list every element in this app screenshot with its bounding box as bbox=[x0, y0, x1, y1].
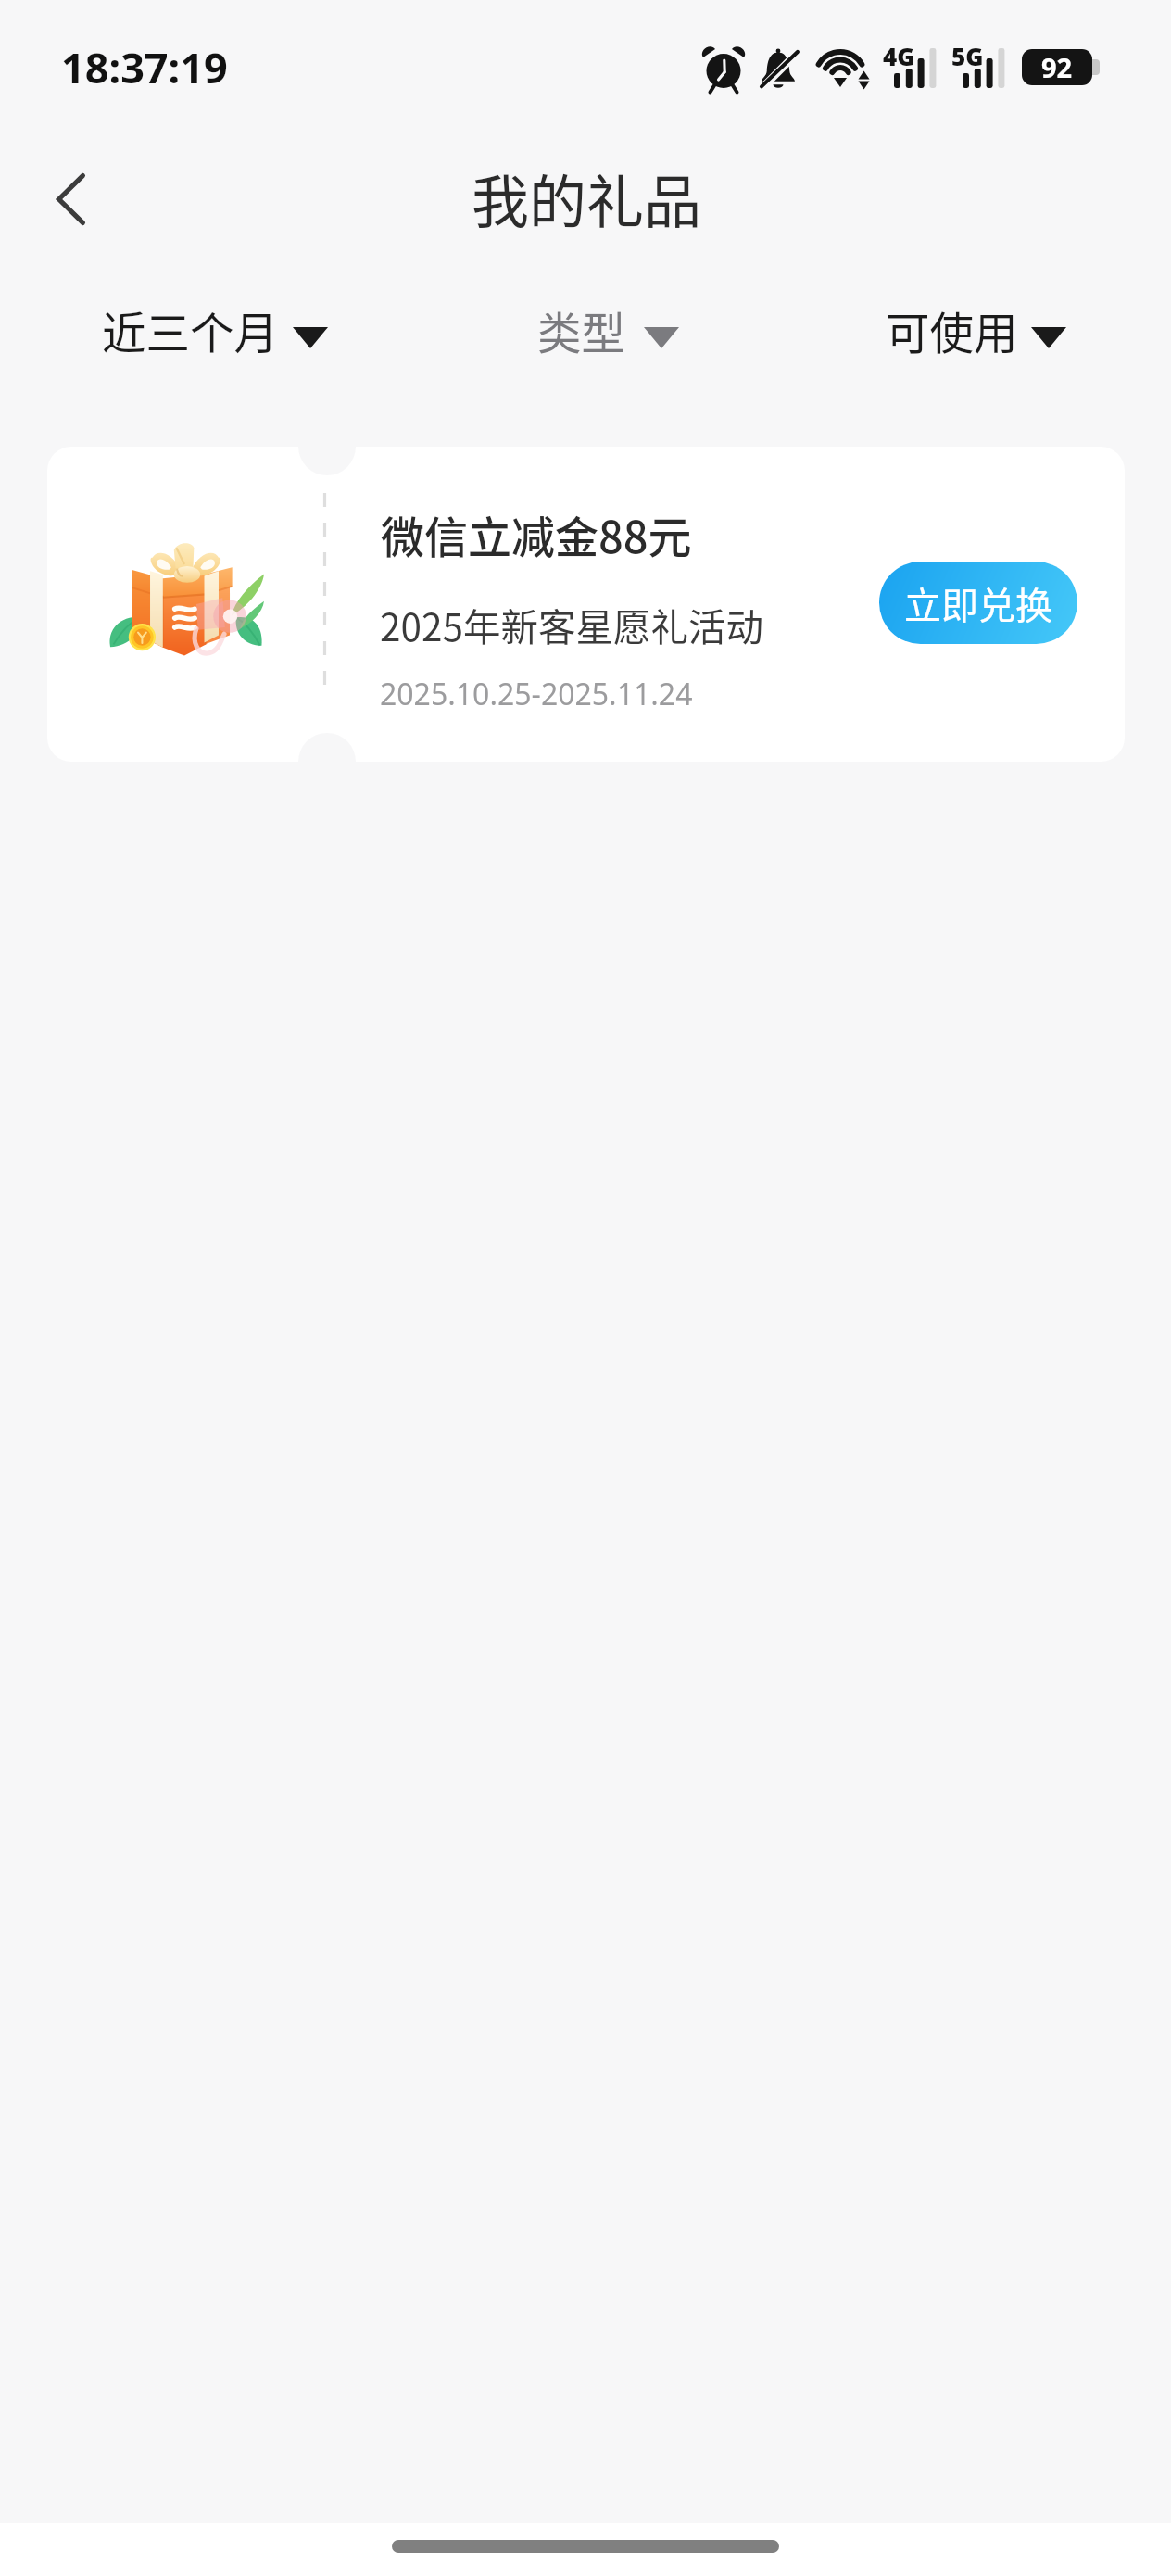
staticText: 2025.10.25-2025.11.24 bbox=[380, 674, 693, 714]
button[interactable]: 立即兑换 bbox=[879, 562, 1077, 644]
staticText: 类型 bbox=[537, 298, 625, 362]
staticText: 18:37:19 bbox=[61, 39, 228, 95]
button[interactable]: 可使用 bbox=[862, 287, 1092, 380]
staticText: 可使用 bbox=[886, 298, 1018, 362]
button[interactable]: 近三个月 bbox=[78, 287, 354, 380]
button[interactable]: Back bbox=[26, 155, 115, 244]
button[interactable]: 类型 bbox=[513, 287, 705, 380]
staticText: 我的礼品 bbox=[472, 157, 702, 240]
staticText: 2025年新客星愿礼活动 bbox=[380, 598, 763, 652]
staticText: 4G bbox=[883, 40, 915, 72]
staticText: 近三个月 bbox=[102, 298, 278, 362]
staticText: 92 bbox=[1041, 49, 1073, 85]
staticText: 立即兑换 bbox=[904, 576, 1052, 630]
staticText: 5G bbox=[951, 40, 984, 72]
staticText: 微信立减金88元 bbox=[381, 502, 692, 565]
button[interactable]: 微信立减金88元 bbox=[47, 447, 1125, 762]
